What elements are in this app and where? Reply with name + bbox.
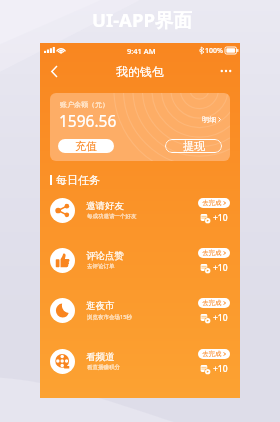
button[interactable]: Back — [43, 60, 65, 82]
button[interactable]: 提现 — [165, 139, 222, 153]
staticText: 1596.56 — [59, 110, 117, 131]
button[interactable]: 充值 — [58, 139, 114, 153]
staticText: 提现 — [183, 139, 205, 153]
staticText: 去完成 — [202, 350, 222, 358]
button[interactable]: 看频道 — [40, 339, 240, 385]
staticText: 账户余额（元） — [60, 100, 109, 109]
staticText: +10 — [213, 312, 228, 324]
staticText: +10 — [213, 262, 228, 274]
button[interactable]: More options — [216, 61, 236, 81]
staticText: 100% — [205, 46, 223, 56]
button[interactable]: 去完成 — [198, 349, 230, 359]
staticText: 去完成 — [202, 199, 222, 207]
staticText: 每日任务 — [56, 173, 100, 187]
staticText: 我的钱包 — [116, 64, 164, 79]
staticText: 充值 — [75, 139, 97, 153]
button[interactable]: 评论点赞 — [40, 238, 240, 284]
staticText: 去完成 — [202, 249, 222, 257]
button[interactable]: 去完成 — [198, 198, 230, 208]
button[interactable]: 逛夜市 — [40, 288, 240, 334]
staticText: 看直播赚积分 — [87, 364, 120, 371]
staticText: 评论点赞 — [86, 250, 124, 262]
staticText: 每成功邀请一个好友 — [87, 213, 137, 220]
staticText: 逛夜市 — [86, 300, 115, 312]
staticText: +10 — [213, 212, 228, 224]
staticText: 明细 — [202, 115, 216, 124]
staticText: 去完成 — [202, 299, 222, 307]
staticText: UI-APP界面 — [92, 7, 192, 32]
button[interactable]: 明细 — [202, 115, 221, 124]
staticText: 9:41 AM — [127, 46, 156, 56]
button[interactable]: 去完成 — [198, 248, 230, 258]
staticText: 看频道 — [86, 351, 115, 363]
button[interactable]: 邀请好友 — [40, 188, 240, 234]
staticText: +10 — [213, 363, 228, 375]
staticText: 邀请好友 — [86, 200, 124, 212]
staticText: 去评论订单 — [87, 263, 115, 270]
button[interactable]: 去完成 — [198, 298, 230, 308]
staticText: 浏览夜市会场15秒 — [87, 313, 132, 321]
